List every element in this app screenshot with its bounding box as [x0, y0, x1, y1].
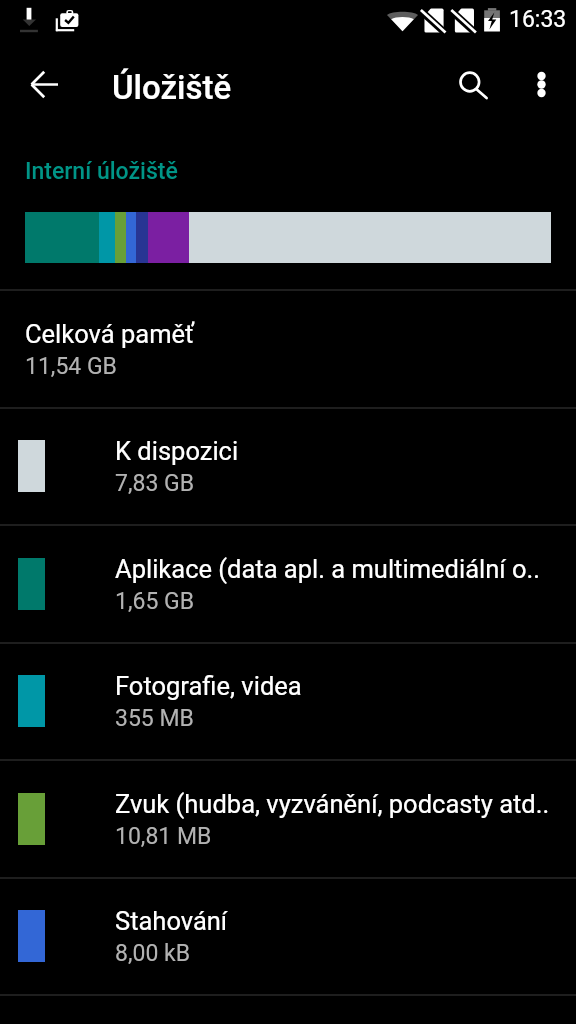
staticText: Úložiště — [112, 68, 232, 107]
staticText: 7,83 GB — [115, 470, 195, 497]
staticText: Stahování — [115, 906, 228, 936]
button[interactable]: Zvuk (hudba, vyzvánění, podcasty atd.. — [0, 761, 576, 877]
staticText: Interní úložiště — [25, 158, 178, 185]
button[interactable]: Celková paměť — [0, 291, 576, 407]
staticText: 16:33 — [509, 6, 567, 33]
button[interactable]: Stahování — [0, 878, 576, 994]
button[interactable]: K dispozici — [0, 408, 576, 524]
staticText: Celková paměť — [25, 319, 194, 349]
button[interactable]: More options — [513, 56, 570, 113]
staticText: K dispozici — [115, 436, 239, 466]
button[interactable]: Back — [16, 56, 73, 113]
staticText: 355 MB — [115, 705, 194, 732]
staticText: 11,54 GB — [25, 353, 117, 380]
button[interactable]: Aplikace (data apl. a multimediální o.. — [0, 526, 576, 642]
staticText: 10,81 MB — [115, 823, 212, 850]
button[interactable]: Search — [446, 58, 503, 115]
button[interactable]: Fotografie, videa — [0, 643, 576, 759]
staticText: Aplikace (data apl. a multimediální o.. — [115, 554, 540, 584]
staticText: 8,00 kB — [115, 940, 190, 967]
staticText: Fotografie, videa — [115, 671, 302, 701]
staticText: 1,65 GB — [115, 588, 195, 615]
staticText: Zvuk (hudba, vyzvánění, podcasty atd.. — [115, 789, 550, 819]
